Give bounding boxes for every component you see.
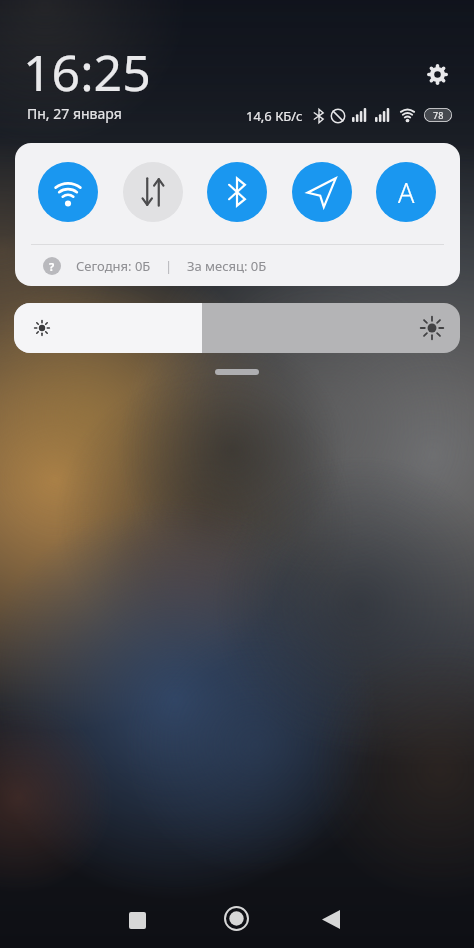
button[interactable] — [207, 162, 267, 222]
staticText: A — [398, 174, 415, 211]
button[interactable] — [123, 162, 183, 222]
button[interactable] — [14, 303, 460, 353]
staticText: Сегодня: 0Б — [76, 257, 151, 275]
button[interactable]: A — [376, 162, 436, 222]
button[interactable] — [215, 369, 259, 375]
button[interactable] — [322, 910, 340, 929]
staticText: 78 — [433, 109, 444, 121]
button[interactable] — [423, 60, 452, 89]
button[interactable] — [292, 162, 352, 222]
staticText: 14,6 КБ/с — [246, 107, 303, 125]
staticText: ? — [49, 259, 55, 274]
button[interactable]: ? — [43, 257, 267, 275]
staticText: | — [165, 257, 173, 275]
staticText: За месяц: 0Б — [187, 257, 267, 275]
button[interactable] — [129, 912, 146, 929]
staticText: 16:25 — [23, 38, 151, 106]
staticText: Пн, 27 января — [27, 104, 122, 123]
button[interactable] — [224, 906, 249, 931]
button[interactable] — [38, 162, 98, 222]
